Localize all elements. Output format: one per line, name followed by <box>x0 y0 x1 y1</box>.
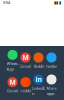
staticText: Gmail <box>20 63 31 69</box>
button[interactable] <box>45 74 58 96</box>
staticText: WhatsApp <box>6 61 18 71</box>
button[interactable] <box>32 52 45 69</box>
staticText: in <box>35 75 41 84</box>
staticText: ▮▮ ▮ <box>54 0 61 5</box>
staticText: Gmail <box>7 88 18 93</box>
staticText: LinkedIn <box>32 85 45 96</box>
staticText: M <box>9 78 15 87</box>
staticText: 9:54 <box>3 0 10 5</box>
button[interactable] <box>45 52 58 69</box>
staticText: M <box>22 53 28 62</box>
button[interactable] <box>19 77 32 93</box>
button[interactable] <box>6 50 19 71</box>
button[interactable]: in <box>32 74 45 96</box>
button[interactable]: M <box>19 52 32 69</box>
staticText: More apps <box>46 85 56 96</box>
staticText: Reddit <box>33 63 43 69</box>
staticText: Twitter <box>45 63 57 69</box>
button[interactable]: M <box>6 77 19 93</box>
staticText: reddit <box>20 88 30 93</box>
